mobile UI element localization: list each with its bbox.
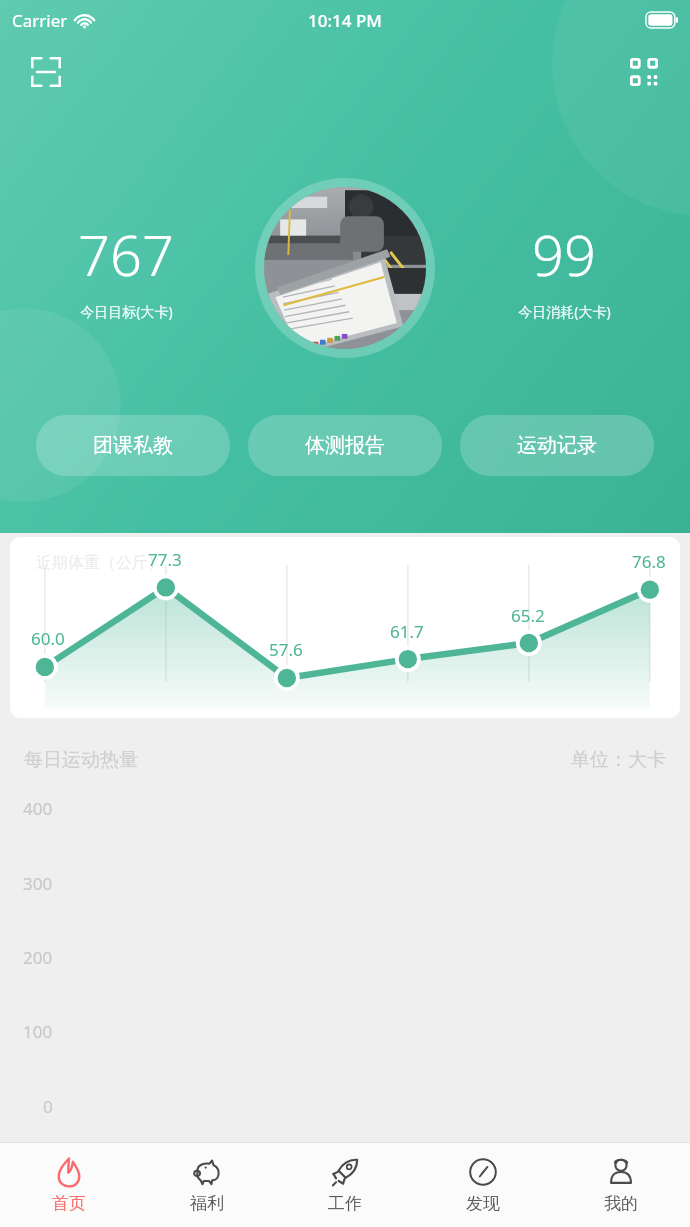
- staticText: 400: [23, 797, 53, 820]
- staticText: 76.8: [632, 550, 666, 573]
- staticText: 单位：大卡: [571, 748, 666, 772]
- button[interactable]: 运动记录: [460, 415, 654, 476]
- staticText: 福利: [190, 1193, 224, 1214]
- staticText: 发现: [466, 1193, 500, 1214]
- staticText: 300: [23, 872, 53, 895]
- staticText: 团课私教: [93, 433, 173, 458]
- button[interactable]: 发现: [414, 1143, 552, 1227]
- staticText: 60.0: [31, 627, 65, 650]
- staticText: 99: [532, 216, 596, 292]
- staticText: 近期体重（公斤）: [36, 553, 164, 573]
- staticText: 77.3: [148, 548, 182, 571]
- button[interactable]: 近期体重（公斤）: [10, 537, 680, 718]
- staticText: 每日运动热量: [24, 748, 138, 772]
- staticText: 体测报告: [305, 433, 385, 458]
- staticText: Carrier: [12, 9, 68, 32]
- staticText: 65.2: [511, 604, 545, 627]
- staticText: 200: [23, 946, 53, 969]
- staticText: 我的: [604, 1193, 638, 1214]
- button[interactable]: 我的: [552, 1143, 690, 1227]
- staticText: 0: [43, 1095, 53, 1118]
- staticText: 57.6: [269, 638, 303, 661]
- staticText: 运动记录: [517, 433, 597, 458]
- staticText: 61.7: [390, 620, 424, 643]
- button[interactable]: 工作: [276, 1143, 414, 1227]
- button[interactable]: 体测报告: [248, 415, 442, 476]
- staticText: 工作: [328, 1193, 362, 1214]
- staticText: 首页: [52, 1193, 86, 1214]
- staticText: 767: [78, 216, 174, 292]
- button[interactable]: QR code: [620, 48, 668, 96]
- staticText: 10:14 PM: [308, 9, 382, 32]
- button[interactable]: Scan: [22, 48, 70, 96]
- staticText: 今日目标(大卡): [80, 302, 173, 321]
- button[interactable]: Profile photo: [252, 178, 438, 358]
- staticText: 100: [23, 1020, 53, 1043]
- button[interactable]: 福利: [138, 1143, 276, 1227]
- staticText: 今日消耗(大卡): [518, 302, 611, 321]
- button[interactable]: 团课私教: [36, 415, 230, 476]
- button[interactable]: 首页: [0, 1143, 138, 1227]
